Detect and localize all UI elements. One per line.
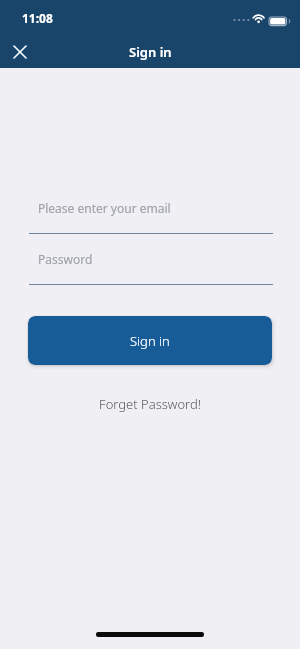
staticText: 11:08 xyxy=(22,10,53,26)
staticText: Sign in xyxy=(129,43,172,61)
staticText: Forget Password! xyxy=(99,395,201,413)
button[interactable]: Sign in xyxy=(28,316,272,365)
staticText: Password xyxy=(38,251,93,267)
staticText: Sign in xyxy=(130,332,170,350)
button[interactable]: Forget Password! xyxy=(0,395,300,413)
button[interactable] xyxy=(8,40,32,64)
staticText: Please enter your email xyxy=(38,200,171,216)
